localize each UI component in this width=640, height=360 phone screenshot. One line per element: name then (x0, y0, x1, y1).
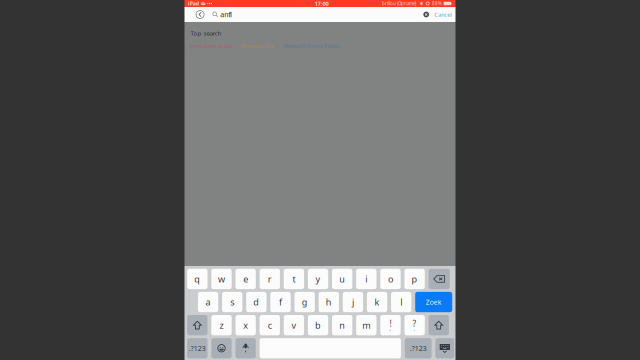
staticText: p (412, 273, 418, 285)
staticText: , (389, 324, 391, 333)
staticText: g (302, 296, 308, 308)
button[interactable]: ? (404, 315, 425, 335)
staticText: j (352, 296, 354, 308)
button[interactable]: ! (380, 315, 401, 335)
button[interactable]: Hide keyboard (435, 338, 454, 358)
staticText: v (291, 319, 296, 331)
staticText: Pokemon GO (241, 43, 273, 50)
staticText: 17:00 (314, 0, 328, 7)
button[interactable]: h (319, 292, 339, 312)
button[interactable]: k (367, 292, 387, 312)
button[interactable]: Shift (429, 315, 449, 335)
button[interactable]: z (211, 315, 232, 335)
staticText: iPad (188, 0, 199, 7)
staticText: Minecraft: Pocket Edition (283, 43, 340, 49)
button[interactable]: Shift (187, 315, 207, 335)
staticText: ! (389, 318, 391, 329)
staticText: d (253, 296, 259, 308)
staticText: k (375, 296, 380, 308)
button[interactable]: o (380, 269, 401, 289)
button[interactable]: f (270, 292, 291, 312)
staticText: brillou (Opname) (382, 0, 416, 6)
staticText: f (279, 296, 282, 308)
button[interactable]: Backspace (429, 269, 450, 289)
staticText: l (400, 296, 402, 308)
staticText: r (268, 273, 272, 285)
button[interactable]: c (260, 315, 280, 335)
button[interactable]: j (343, 292, 363, 312)
button[interactable]: v (284, 315, 304, 335)
button[interactable]: q (187, 269, 207, 289)
staticText: o (388, 273, 393, 285)
button[interactable]: Minecraft: Pocket Edition (283, 43, 340, 49)
button[interactable]: .?123 (405, 338, 432, 358)
staticText: a (206, 296, 211, 308)
button[interactable]: b (308, 315, 328, 335)
button[interactable]: i (356, 269, 376, 289)
button[interactable]: p (404, 269, 425, 289)
button[interactable]: g (294, 292, 315, 312)
staticText: e (243, 273, 248, 285)
staticText: u (339, 273, 345, 285)
staticText: ? (413, 318, 417, 329)
button[interactable]: Back (196, 10, 204, 19)
button[interactable]: Dictation (235, 338, 256, 358)
button[interactable]: Hero Generations (190, 43, 232, 50)
staticText: Top search (190, 29, 221, 37)
staticText: z (219, 319, 223, 331)
button[interactable]: Zoek (415, 292, 452, 312)
staticText: q (194, 273, 200, 285)
button[interactable]: Emoji (211, 338, 232, 358)
button[interactable]: y (308, 269, 328, 289)
staticText: . (414, 324, 416, 333)
button[interactable]: r (260, 269, 280, 289)
staticText: Hero Generations (190, 43, 232, 50)
staticText: anf (220, 10, 230, 19)
button[interactable]: Pokemon GO (241, 43, 273, 50)
button[interactable]: u (332, 269, 352, 289)
staticText: t (292, 273, 295, 285)
button[interactable]: w (211, 269, 232, 289)
button[interactable]: a (198, 292, 218, 312)
button[interactable]: Clear text (423, 12, 429, 17)
button[interactable]: l (391, 292, 411, 312)
staticText: Zoek (426, 297, 442, 307)
button[interactable]: x (235, 315, 256, 335)
button[interactable]: d (246, 292, 266, 312)
staticText: h (326, 296, 332, 308)
staticText: w (218, 273, 225, 285)
staticText: .?123 (410, 343, 427, 353)
button[interactable]: .?123 (187, 338, 207, 358)
staticText: 88% (432, 0, 442, 6)
button[interactable]: n (332, 315, 352, 335)
staticText: i (365, 273, 367, 285)
button[interactable]: s (222, 292, 242, 312)
staticText: m (362, 319, 370, 331)
button[interactable]: Cancel (434, 11, 451, 18)
staticText: .?123 (189, 343, 206, 353)
button[interactable]: t (284, 269, 304, 289)
staticText: x (243, 319, 248, 331)
staticText: n (339, 319, 345, 331)
staticText: Cancel (434, 11, 451, 18)
button[interactable]: m (356, 315, 376, 335)
button[interactable]: e (235, 269, 256, 289)
staticText: y (315, 273, 320, 285)
staticText: c (268, 319, 272, 331)
staticText: s (230, 296, 234, 308)
staticText: b (315, 319, 321, 331)
